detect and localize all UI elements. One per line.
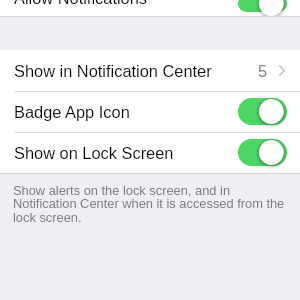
button[interactable]: Show in Notification Center	[0, 50, 300, 91]
other: Open	[279, 65, 285, 76]
button[interactable]: Show on Lock Screen	[238, 139, 287, 166]
staticText: Show on Lock Screen	[14, 144, 174, 162]
button[interactable]: Show on Lock Screen	[0, 133, 300, 173]
staticText: 5	[258, 62, 268, 80]
button[interactable]: Allow Notifications	[0, 0, 300, 17]
staticText: Badge App Icon	[14, 103, 130, 121]
button[interactable]: Badge App Icon	[238, 98, 287, 125]
staticText: Allow Notifications	[14, 0, 147, 6]
button[interactable]: Allow Notifications	[238, 0, 287, 12]
button[interactable]: Badge App Icon	[0, 92, 300, 132]
staticText: Show alerts on the lock screen, and in N…	[13, 183, 288, 225]
staticText: Show in Notification Center	[14, 62, 212, 80]
